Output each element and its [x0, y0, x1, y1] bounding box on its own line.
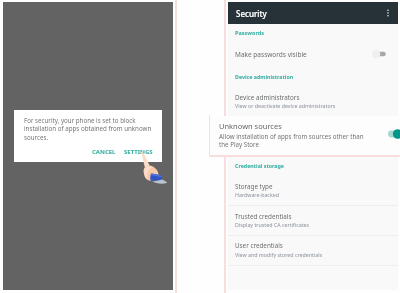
- staticText: Unknown sources: [219, 121, 282, 131]
- button[interactable]: [228, 90, 398, 112]
- staticText: View and modify stored credentials: [235, 251, 323, 258]
- staticText: Hardware-backed: [235, 191, 279, 198]
- button[interactable]: SETTINGS: [122, 145, 155, 159]
- staticText: SETTINGS: [124, 148, 153, 156]
- staticText: Credential storage: [235, 162, 285, 169]
- staticText: Display trusted CA certificates: [235, 221, 310, 228]
- staticText: View or deactivate device administrators: [235, 102, 336, 109]
- staticText: Passwords: [235, 29, 264, 36]
- button[interactable]: [228, 208, 398, 234]
- staticText: For security, your phone is set to block…: [24, 116, 153, 142]
- staticText: Device administrators: [235, 93, 300, 102]
- staticText: Device administration: [235, 73, 294, 80]
- button[interactable]: [210, 116, 400, 155]
- button[interactable]: More options: [380, 7, 392, 19]
- button[interactable]: CANCEL: [90, 145, 118, 159]
- staticText: Storage type: [235, 182, 273, 191]
- button[interactable]: [228, 238, 398, 264]
- staticText: Allow installation of apps from sources …: [219, 132, 374, 148]
- button[interactable]: [228, 44, 398, 65]
- button[interactable]: Make passwords visible toggle: [366, 48, 386, 60]
- staticText: User credentials: [235, 241, 283, 250]
- staticText: Trusted credentials: [235, 212, 292, 221]
- staticText: Security: [236, 8, 267, 19]
- staticText: Make passwords visible: [235, 50, 307, 59]
- button[interactable]: [228, 178, 398, 204]
- staticText: CANCEL: [92, 148, 116, 156]
- button[interactable]: Unknown sources toggle: [388, 127, 400, 141]
